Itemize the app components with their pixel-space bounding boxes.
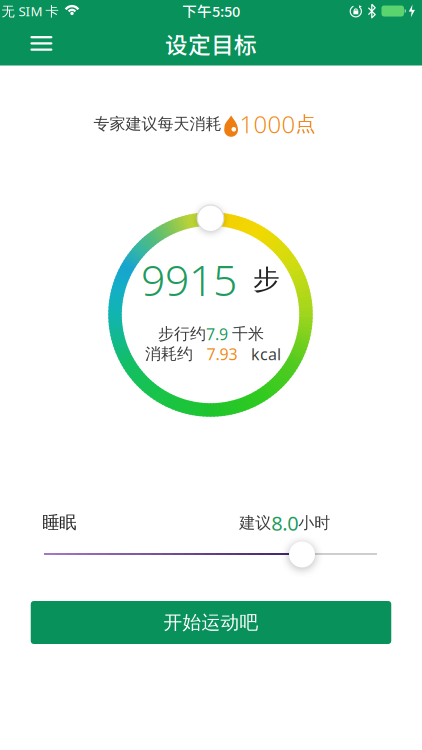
staticText: 步行约 bbox=[158, 324, 206, 344]
staticText: 1000 bbox=[239, 108, 295, 140]
staticText: 建议 bbox=[239, 513, 271, 533]
staticText: 7.93 bbox=[206, 343, 237, 365]
button[interactable]: Sleep duration slider bbox=[289, 541, 315, 567]
staticText: 点 bbox=[295, 112, 315, 136]
staticText: 设定目标 bbox=[165, 27, 257, 60]
staticText: 开始运动吧 bbox=[163, 611, 258, 634]
button[interactable]: 开始运动吧 bbox=[31, 601, 391, 644]
staticText: kcal bbox=[251, 343, 281, 365]
button[interactable]: Menu bbox=[23, 27, 59, 59]
staticText: 无 SIM 卡 bbox=[1, 2, 58, 20]
staticText: 睡眠 bbox=[42, 512, 76, 533]
staticText: 步 bbox=[253, 263, 280, 296]
staticText: 小时 bbox=[298, 513, 330, 533]
staticText: 9915 bbox=[141, 251, 237, 308]
staticText: 7.9 bbox=[206, 323, 228, 345]
staticText: 消耗约 bbox=[145, 344, 193, 364]
staticText: 下午5:50 bbox=[182, 0, 240, 21]
staticText: 专家建议每天消耗 bbox=[93, 114, 221, 134]
staticText: 8.0 bbox=[271, 510, 298, 536]
staticText: 千米 bbox=[232, 324, 264, 344]
